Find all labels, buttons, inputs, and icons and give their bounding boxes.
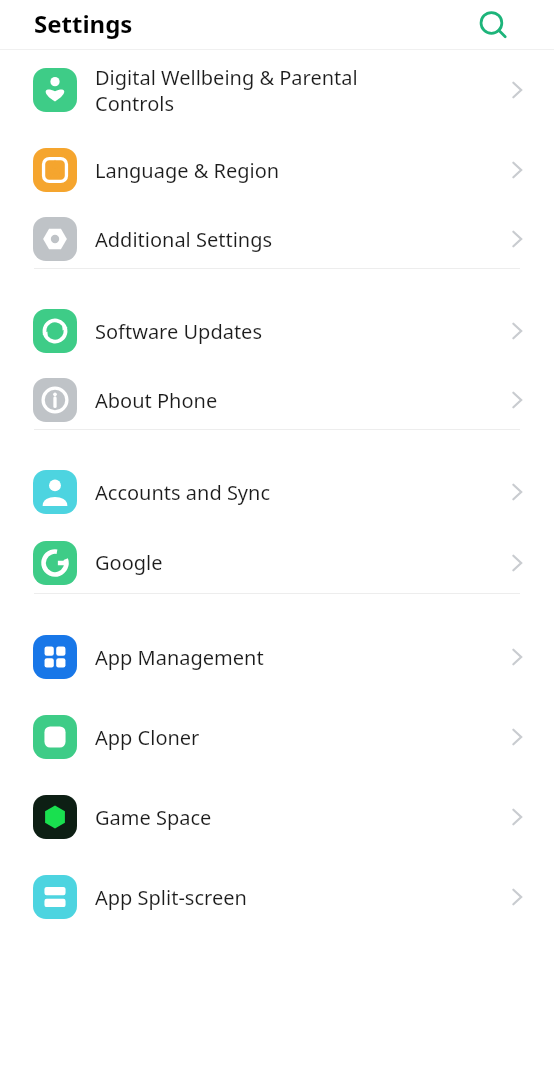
staticText: Game Space [95,804,504,831]
button[interactable]: Google [0,532,554,593]
button[interactable]: Software Updates [0,291,554,371]
staticText: Software Updates [95,318,504,345]
button[interactable]: Additional Settings [0,210,554,268]
staticText: Settings [34,7,133,40]
button[interactable]: App Management [0,617,554,697]
button[interactable]: Language & Region [0,130,554,210]
button[interactable]: Digital Wellbeing & Parental Controls [0,50,554,130]
button[interactable]: About Phone [0,371,554,429]
button[interactable]: Game Space [0,777,554,857]
button[interactable]: Search [472,4,514,46]
staticText: Google [95,549,504,576]
button[interactable]: App Split-screen [0,857,554,937]
staticText: About Phone [95,387,504,414]
staticText: Accounts and Sync [95,479,504,506]
staticText: Digital Wellbeing & Parental Controls [95,64,504,117]
button[interactable]: App Cloner [0,697,554,777]
staticText: App Cloner [95,724,504,751]
button[interactable]: Accounts and Sync [0,452,554,532]
staticText: App Management [95,644,504,671]
staticText: Additional Settings [95,226,504,253]
staticText: App Split-screen [95,884,504,911]
staticText: Language & Region [95,157,504,184]
